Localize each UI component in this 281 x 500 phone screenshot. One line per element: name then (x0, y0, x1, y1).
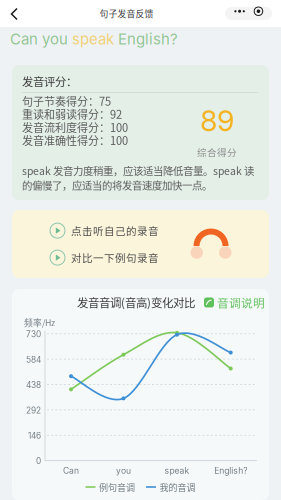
staticText: 点击听自己的录音 (71, 223, 159, 238)
staticText: 发音音调(音高)变化对比 (77, 294, 195, 311)
staticText: 例句音调 (99, 480, 135, 493)
staticText: 发音准确性得分：100 (22, 132, 128, 148)
button[interactable]: 音调说明 (204, 294, 265, 311)
button[interactable]: Back (0, 0, 28, 27)
staticText: 584 (26, 355, 41, 365)
staticText: 音调说明 (217, 294, 265, 311)
staticText: 730 (26, 329, 41, 339)
staticText: 89 (200, 103, 234, 138)
staticText: Can you (10, 30, 72, 48)
button[interactable]: More options (225, 7, 272, 20)
staticText: English? (214, 466, 247, 476)
staticText: 的偏慢了，应适当的将发音速度加快一点。 (22, 177, 212, 192)
staticText: English? (118, 30, 178, 48)
staticText: you (116, 466, 131, 476)
staticText: 对比一下例句录音 (71, 250, 159, 265)
staticText: 句子节奏得分：75 (22, 93, 111, 109)
staticText: 438 (26, 380, 41, 390)
staticText: speak (164, 466, 189, 476)
staticText: Can (63, 466, 79, 476)
staticText: 发音评分： (22, 73, 77, 89)
staticText: 发音流利度得分：100 (22, 119, 128, 135)
staticText: 我的音调 (159, 480, 195, 493)
staticText: speak 发音力度稍重，应该适当降低音量。speak 读 (22, 163, 254, 178)
staticText: 综合得分 (197, 145, 237, 159)
staticText: 句子发音反馈 (99, 7, 153, 20)
staticText: 重读和弱读得分：92 (22, 106, 122, 122)
staticText: 146 (28, 431, 41, 441)
staticText: 292 (26, 405, 41, 415)
button[interactable]: 点击听自己的录音 (50, 223, 159, 238)
staticText: 频率/Hz (24, 316, 55, 329)
staticText: speak (72, 30, 118, 48)
staticText: 0 (36, 456, 41, 466)
button[interactable]: 对比一下例句录音 (50, 250, 159, 265)
